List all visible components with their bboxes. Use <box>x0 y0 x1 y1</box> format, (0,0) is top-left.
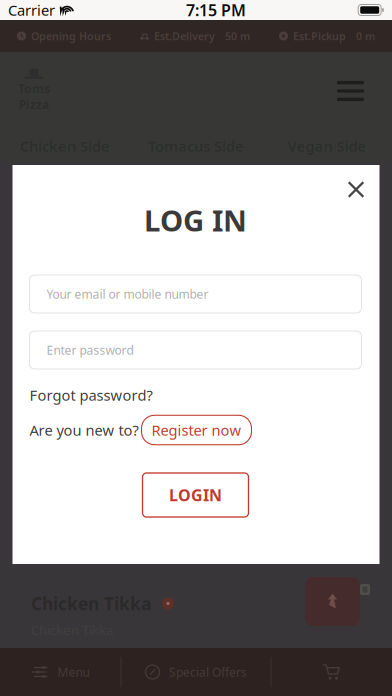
staticText: Register now <box>151 420 241 440</box>
staticText: 50 m <box>225 29 250 43</box>
staticText: Vegan Side <box>287 136 366 156</box>
staticText: Carrier <box>8 0 55 20</box>
staticText: Menu <box>57 664 89 680</box>
staticText: Toms <box>18 81 50 96</box>
staticText: Chicken Tikka <box>31 592 151 615</box>
staticText: LOGIN <box>169 484 222 506</box>
button[interactable]: Enter password <box>29 331 361 369</box>
button[interactable]: Menu <box>328 72 373 110</box>
staticText: 0 m <box>356 29 375 43</box>
staticText: Est.Pickup <box>293 29 346 43</box>
button[interactable]: Special Offers <box>121 648 270 696</box>
staticText: Are you new to? <box>29 420 138 440</box>
staticText: 7:15 PM <box>186 0 246 21</box>
staticText: Your email or mobile number <box>46 286 208 302</box>
staticText: Est.Delivery <box>154 29 215 43</box>
staticText: LOG IN <box>144 200 247 239</box>
button[interactable]: LOGIN <box>142 473 248 517</box>
staticText: Pizza <box>19 96 49 112</box>
staticText: Opening Hours <box>31 29 111 43</box>
button[interactable]: Register now <box>141 415 251 445</box>
button[interactable]: Your email or mobile number <box>29 275 361 313</box>
staticText: Enter password <box>46 342 133 358</box>
staticText: Forgot password? <box>29 385 152 405</box>
button[interactable]: Forgot password? <box>29 384 169 406</box>
staticText: Chicken Side <box>20 136 110 156</box>
staticText: Tomacus Side <box>148 136 244 156</box>
staticText: Special Offers <box>169 664 247 680</box>
button[interactable]: Menu <box>0 648 120 696</box>
button[interactable]: Close <box>336 170 373 207</box>
